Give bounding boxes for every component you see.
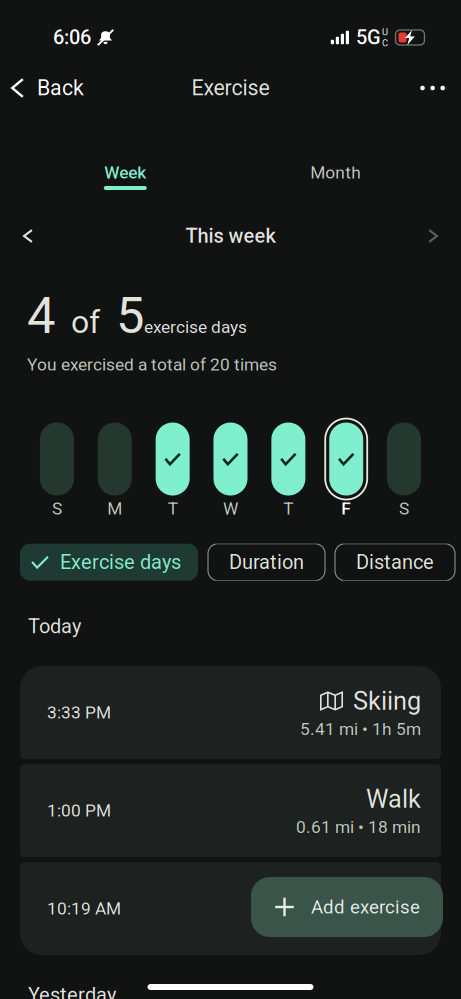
staticText: Back [37, 75, 84, 100]
staticText: Add exercise [311, 896, 420, 918]
button[interactable]: W [207, 421, 253, 518]
button[interactable]: 1:00 PM [20, 764, 441, 857]
staticText: 0.61 mi • 18 min [296, 817, 421, 837]
staticText: 4 [27, 286, 55, 345]
staticText: of [55, 303, 116, 341]
staticText: 5 [116, 286, 144, 345]
button[interactable]: T [265, 421, 311, 518]
staticText: Exercise days [60, 550, 181, 574]
staticText: C [382, 37, 388, 48]
button[interactable]: Month [230, 114, 441, 190]
staticText: T [168, 498, 178, 519]
button[interactable]: Distance [335, 544, 455, 581]
staticText: 3:33 PM [47, 702, 111, 723]
button[interactable]: Duration [208, 544, 325, 581]
button[interactable]: Add exercise [251, 877, 443, 937]
staticText: Duration [229, 550, 304, 574]
staticText: You exercised a total of 20 times [27, 354, 277, 375]
button[interactable]: S [381, 421, 427, 518]
staticText: Week [104, 162, 146, 183]
button[interactable]: Week [20, 114, 230, 190]
button[interactable]: Next week [414, 215, 452, 257]
staticText: F [341, 498, 351, 519]
staticText: Yesterday [28, 983, 116, 999]
staticText: Distance [356, 550, 434, 574]
staticText: This week [185, 224, 275, 248]
button[interactable]: M [92, 421, 138, 518]
button[interactable]: 3:33 PM [20, 666, 441, 759]
staticText: U [382, 27, 388, 37]
staticText: T [283, 498, 293, 519]
staticText: Month [310, 162, 361, 183]
staticText: 6:06 [53, 26, 91, 49]
staticText: 10:19 AM [47, 898, 121, 919]
button[interactable]: 10:19 AM [20, 862, 441, 955]
button[interactable]: T [150, 421, 196, 518]
button[interactable]: Exercise days [20, 544, 198, 581]
staticText: Walk [366, 784, 421, 814]
staticText: 5.41 mi • 1h 5m [300, 719, 421, 739]
button[interactable]: S [34, 421, 80, 518]
staticText: M [107, 498, 122, 519]
button[interactable]: Back [0, 65, 95, 110]
staticText: W [223, 498, 238, 519]
staticText: Skiing [353, 686, 421, 716]
staticText: 1:00 PM [47, 800, 111, 821]
staticText: exercise days [144, 317, 247, 337]
staticText: Exercise [191, 75, 269, 100]
staticText: 5G [356, 26, 381, 49]
staticText: S [52, 498, 62, 519]
staticText: Today [28, 615, 81, 638]
button[interactable]: Previous week [9, 215, 47, 257]
button[interactable]: F [323, 421, 369, 518]
staticText: S [399, 498, 409, 519]
button[interactable]: More options [404, 70, 461, 106]
